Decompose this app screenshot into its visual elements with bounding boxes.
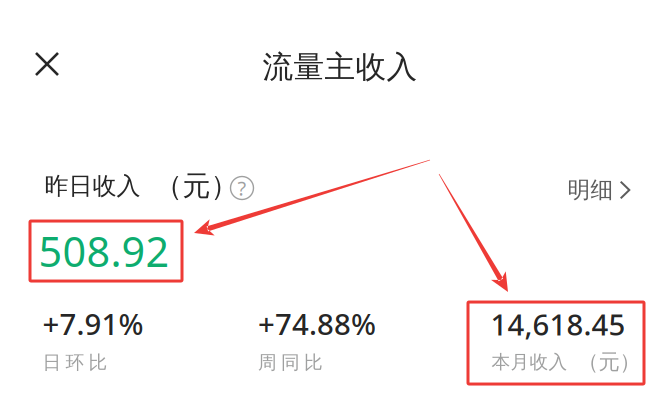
staticText: （元） [154, 169, 238, 203]
staticText: +7.91% [42, 304, 143, 343]
staticText: 流量主收入 [262, 48, 417, 86]
staticText: 昨日收入 [44, 171, 140, 201]
staticText: 日 环 比 [42, 351, 107, 374]
staticText: 周 同 比 [258, 351, 323, 374]
staticText: 本月收入 [491, 350, 567, 373]
staticText: ? [237, 175, 246, 201]
staticText: 明细 [567, 176, 613, 204]
staticText: +74.88% [258, 304, 376, 343]
staticText: （元） [577, 349, 640, 375]
button[interactable]: 明细 [559, 168, 638, 212]
button[interactable]: 关闭 [21, 38, 72, 89]
staticText: 14,618.45 [490, 304, 625, 343]
staticText: 508.92 [38, 224, 169, 278]
